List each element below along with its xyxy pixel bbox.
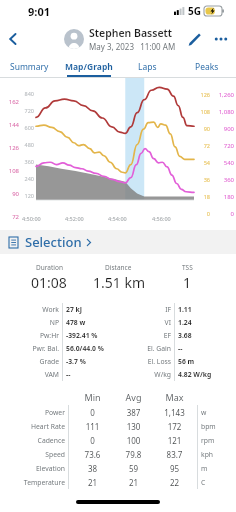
staticText: 162 (2, 98, 19, 106)
staticText: 27 kJ (66, 305, 114, 314)
button[interactable]: Back (0, 22, 26, 56)
staticText: 600 (19, 124, 34, 131)
staticText: Peaks (195, 61, 219, 73)
staticText: 4:52:00 (65, 215, 84, 222)
staticText: 5G (188, 4, 201, 18)
staticText: -392.41 % (66, 331, 114, 340)
staticText: Distance (105, 263, 132, 272)
staticText: 79.8 (113, 449, 154, 460)
staticText: 0 (212, 210, 234, 218)
staticText: Pwr. Bal. (16, 344, 59, 353)
staticText: 1.24 (178, 318, 226, 327)
staticText: 108 (198, 108, 210, 115)
staticText: Laps (138, 61, 157, 73)
button[interactable]: Edit (180, 22, 208, 56)
staticText: 0 (198, 210, 210, 217)
staticText: 36 (198, 176, 210, 183)
staticText: Map/Graph (65, 61, 113, 73)
staticText: 360 (212, 176, 234, 184)
staticText: 540 (212, 159, 234, 167)
staticText: 840 (19, 90, 34, 97)
staticText: 9:01 (28, 4, 50, 19)
staticText: 108 (2, 167, 19, 175)
staticText: IF (128, 305, 171, 314)
staticText: 18 (198, 193, 210, 200)
staticText: 54 (198, 159, 210, 166)
staticText: 1.11 (178, 305, 226, 314)
staticText: 21 (113, 477, 154, 488)
staticText: 1,260 (212, 91, 234, 99)
staticText: -- (66, 370, 114, 379)
staticText: 0 (72, 435, 113, 446)
staticText: 387 (113, 407, 154, 418)
staticText: Elevation (14, 464, 65, 473)
button[interactable]: Selection (0, 230, 236, 254)
staticText: 126 (198, 91, 210, 98)
staticText: 72 (2, 213, 19, 221)
staticText: 3.68 (178, 331, 226, 340)
staticText: 4.82 W/kg (178, 370, 226, 379)
staticText: 720 (19, 107, 34, 114)
staticText: m (201, 464, 226, 473)
staticText: 180 (212, 193, 234, 201)
staticText: Power (14, 408, 65, 417)
staticText: 478 w (66, 318, 114, 327)
staticText: NP (16, 318, 59, 327)
staticText: 4:50:00 (22, 215, 41, 222)
staticText: rpm (201, 436, 226, 445)
staticText: 0 (72, 407, 113, 418)
staticText: 73.6 (72, 449, 113, 460)
staticText: 172 (154, 421, 195, 432)
staticText: 111 (72, 421, 113, 432)
button[interactable]: Peaks (177, 56, 236, 78)
button[interactable]: Map/Graph (59, 56, 118, 78)
staticText: 56.0/44.0 % (66, 344, 114, 353)
staticText: 83.7 (154, 449, 195, 460)
staticText: kph (201, 450, 226, 459)
staticText: VI (128, 318, 171, 327)
button[interactable]: Laps (118, 56, 177, 78)
staticText: Pw:Hr (16, 331, 59, 340)
staticText: 59 (113, 463, 154, 474)
staticText: -3.7 % (66, 357, 114, 366)
staticText: Temperature (14, 478, 65, 487)
staticText: 100 (113, 435, 154, 446)
staticText: 90 (198, 125, 210, 132)
staticText: VAM (16, 370, 59, 379)
button[interactable]: Summary (0, 56, 59, 78)
staticText: 1.51 km (93, 273, 145, 292)
staticText: Avg (113, 391, 154, 403)
staticText: EF (128, 331, 171, 340)
staticText: 144 (2, 121, 19, 129)
staticText: Work (16, 305, 59, 314)
staticText: 22 (154, 477, 195, 488)
staticText: 1,080 (212, 108, 234, 116)
staticText: Cadence (14, 436, 65, 445)
staticText: TSS (182, 263, 193, 272)
staticText: 240 (19, 175, 34, 182)
staticText: Max (154, 391, 195, 403)
staticText: El. Loss (128, 357, 171, 366)
staticText: 01:08 (31, 273, 67, 292)
staticText: 38 (72, 463, 113, 474)
staticText: Speed (14, 450, 65, 459)
staticText: Summary (10, 61, 49, 73)
staticText: 95 (154, 463, 195, 474)
staticText: w (201, 408, 226, 417)
staticText: -- (178, 344, 226, 353)
staticText: 480 (19, 141, 34, 148)
staticText: Min (72, 391, 113, 403)
staticText: 21 (72, 477, 113, 488)
staticText: Selection (25, 233, 82, 251)
staticText: 360 (19, 158, 34, 165)
staticText: 900 (212, 125, 234, 133)
staticText: 56 m (178, 357, 226, 366)
staticText: 1 (183, 273, 192, 292)
staticText: May 3, 2023 11:00 AM (89, 41, 176, 52)
staticText: 121 (154, 435, 195, 446)
staticText: Heart Rate (14, 422, 65, 431)
button[interactable]: More options (208, 22, 234, 56)
staticText: 4:56:00 (152, 215, 171, 222)
staticText: Stephen Bassett (89, 26, 173, 40)
staticText: 130 (113, 421, 154, 432)
